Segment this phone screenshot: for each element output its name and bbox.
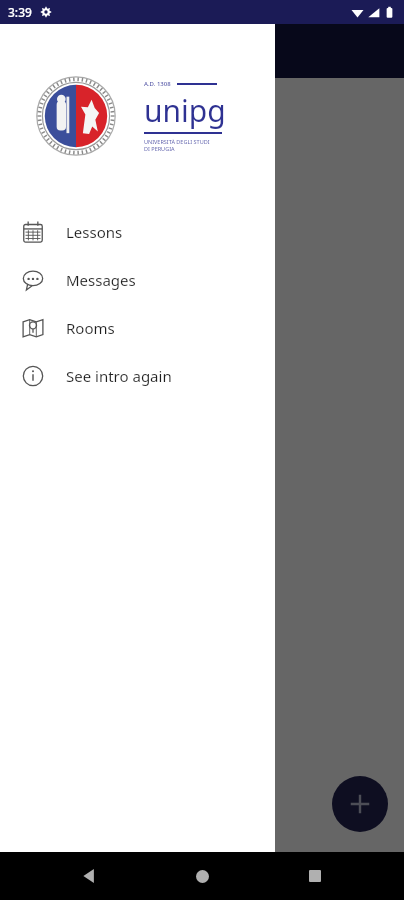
staticText: See intro again (66, 366, 172, 386)
button[interactable]: Rooms (0, 304, 275, 352)
button[interactable]: Messages (0, 256, 275, 304)
staticText: Rooms (66, 318, 115, 338)
button[interactable]: See intro again (0, 352, 275, 400)
staticText: 3:39 (8, 4, 32, 20)
button[interactable]: Home (178, 852, 226, 900)
button[interactable]: Back (65, 852, 113, 900)
button[interactable]: Recent apps (291, 852, 339, 900)
staticText: DI PERUGIA (144, 145, 175, 152)
staticText: unipg (144, 90, 226, 131)
staticText: UNIVERSITÀ DEGLI STUDI (144, 138, 210, 145)
button[interactable]: Add (332, 776, 388, 832)
staticText: Messages (66, 270, 136, 290)
staticText: A.D. 1308 (144, 80, 171, 88)
button[interactable]: Lessons (0, 208, 275, 256)
staticText: Lessons (66, 222, 123, 242)
